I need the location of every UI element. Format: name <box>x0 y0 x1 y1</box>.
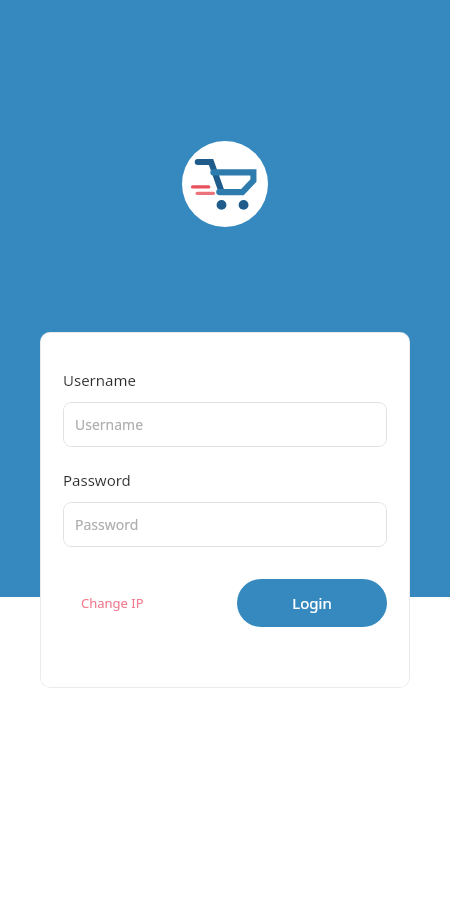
staticText: Login <box>292 593 332 613</box>
staticText: Username <box>75 415 144 434</box>
other: App logo <box>196 155 254 213</box>
staticText: Password <box>63 470 131 490</box>
button[interactable]: Username <box>63 402 387 447</box>
button[interactable]: Change IP <box>63 584 162 622</box>
staticText: Username <box>63 370 136 390</box>
button[interactable]: Login <box>237 579 387 627</box>
button[interactable]: Password <box>63 502 387 547</box>
staticText: Password <box>75 515 139 534</box>
staticText: Change IP <box>81 594 144 612</box>
